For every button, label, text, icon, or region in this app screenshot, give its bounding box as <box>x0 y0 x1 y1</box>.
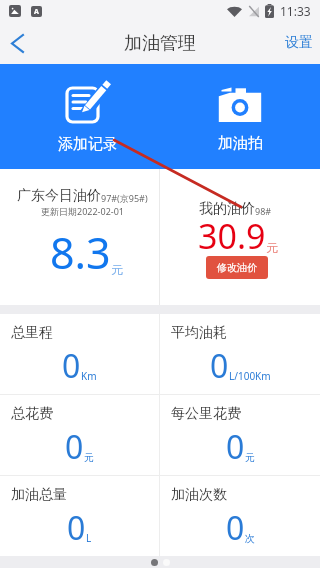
staticText: 总花费 <box>11 405 53 423</box>
staticText: 更新日期2022-02-01 <box>41 205 124 217</box>
staticText: 97#(京95#) <box>101 192 148 204</box>
staticText: 30.9 <box>198 213 266 259</box>
staticText: 元 <box>111 262 123 277</box>
button[interactable]: 修改油价 <box>206 256 268 279</box>
staticText: 加油次数 <box>171 486 227 504</box>
button[interactable]: 每公里花费 <box>160 395 320 475</box>
staticText: A <box>34 7 39 17</box>
staticText: 加油总量 <box>11 486 67 504</box>
staticText: 8.3 <box>50 223 111 282</box>
button[interactable]: 加油次数 <box>160 476 320 556</box>
staticText: 0 <box>65 425 84 469</box>
staticText: 修改油价 <box>217 261 257 274</box>
staticText: 98# <box>255 205 272 217</box>
button[interactable]: 我的油价 <box>160 169 320 305</box>
staticText: 加油拍 <box>218 134 263 153</box>
button[interactable]: 总花费 <box>0 395 159 475</box>
staticText: 11:33 <box>280 3 311 19</box>
button[interactable]: Back <box>0 22 34 64</box>
button[interactable]: 广东今日油价 <box>0 169 159 305</box>
button[interactable]: 加油拍 <box>160 64 320 169</box>
staticText: 0 <box>226 425 245 469</box>
staticText: 设置 <box>285 34 313 52</box>
staticText: 广东今日油价 <box>17 187 101 205</box>
staticText: 0 <box>62 344 81 388</box>
staticText: 总里程 <box>11 324 53 342</box>
button[interactable]: 加油总量 <box>0 476 159 556</box>
staticText: 元 <box>245 451 255 464</box>
staticText: 0 <box>67 506 86 550</box>
staticText: 加油管理 <box>124 32 196 55</box>
staticText: 次 <box>245 532 255 545</box>
staticText: 0 <box>210 344 229 388</box>
staticText: 元 <box>266 240 278 255</box>
staticText: 每公里花费 <box>171 405 241 423</box>
button[interactable]: 平均油耗 <box>160 314 320 394</box>
staticText: 元 <box>84 451 94 464</box>
staticText: 添加记录 <box>58 135 118 154</box>
staticText: Km <box>81 369 97 383</box>
button[interactable]: 总里程 <box>0 314 159 394</box>
staticText: L/100Km <box>229 369 271 383</box>
button[interactable]: 设置 <box>276 23 320 63</box>
button[interactable]: 添加记录 <box>0 64 160 169</box>
staticText: 0 <box>226 506 245 550</box>
staticText: 我的油价 <box>199 200 255 218</box>
staticText: 平均油耗 <box>171 324 227 342</box>
staticText: L <box>86 531 92 545</box>
